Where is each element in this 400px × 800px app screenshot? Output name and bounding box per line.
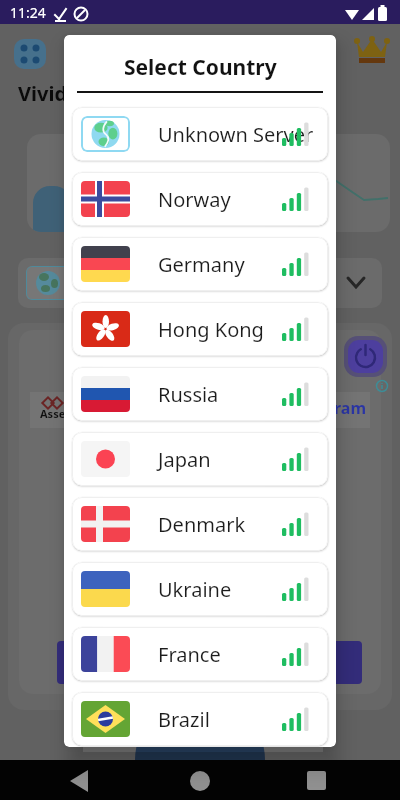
staticText: 11:24 bbox=[10, 3, 46, 22]
staticText: Brazil bbox=[158, 706, 210, 733]
button[interactable]: Russia bbox=[72, 367, 328, 421]
button[interactable] bbox=[57, 641, 362, 684]
button[interactable]: Ukraine bbox=[72, 562, 328, 616]
staticText: Vivid VPN bbox=[18, 80, 114, 107]
button[interactable] bbox=[299, 762, 335, 798]
staticText: Assent bbox=[40, 406, 78, 421]
staticText: Germany bbox=[158, 251, 245, 278]
button[interactable]: France bbox=[72, 627, 328, 681]
staticText: Norway bbox=[158, 186, 231, 213]
button[interactable]: Germany bbox=[72, 237, 328, 291]
button[interactable] bbox=[348, 340, 383, 373]
button[interactable]: Unknown Server bbox=[72, 107, 328, 161]
staticText: Japan bbox=[158, 446, 211, 473]
button[interactable]: Norway bbox=[72, 172, 328, 226]
staticText: Russia bbox=[158, 381, 219, 408]
button[interactable] bbox=[62, 762, 98, 798]
button[interactable] bbox=[352, 36, 392, 66]
button[interactable]: Hong Kong bbox=[72, 302, 328, 356]
button[interactable] bbox=[182, 762, 218, 798]
staticText: Unknown Server bbox=[158, 121, 314, 148]
button[interactable]: Denmark bbox=[72, 497, 328, 551]
staticText: Ukraine bbox=[158, 576, 232, 603]
staticText: France bbox=[158, 641, 221, 668]
button[interactable]: Japan bbox=[72, 432, 328, 486]
staticText: Hong Kong bbox=[158, 316, 264, 343]
staticText: ram bbox=[334, 397, 367, 419]
button[interactable] bbox=[18, 258, 382, 308]
staticText: Select Country bbox=[124, 53, 277, 82]
staticText: Denmark bbox=[158, 511, 246, 538]
button[interactable] bbox=[14, 39, 46, 69]
button[interactable]: Brazil bbox=[72, 692, 328, 746]
